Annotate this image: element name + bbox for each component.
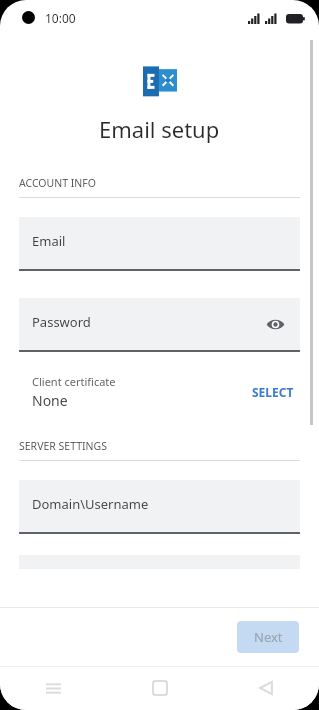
staticText: Password: [32, 313, 91, 331]
button[interactable]: SELECT: [246, 378, 300, 406]
button[interactable]: Domain\Username: [19, 480, 300, 532]
staticText: Client certificate: [32, 374, 116, 389]
button[interactable]: Recents: [0, 666, 107, 710]
staticText: None: [32, 391, 68, 410]
staticText: Domain\Username: [32, 495, 149, 513]
staticText: 10:00: [45, 10, 76, 26]
button[interactable]: Client certificate: [0, 369, 319, 415]
staticText: SERVER SETTINGS: [19, 439, 107, 453]
staticText: Email setup: [99, 114, 220, 144]
button[interactable]: Back: [213, 666, 319, 710]
staticText: ACCOUNT INFO: [19, 176, 96, 190]
button[interactable]: Next: [237, 621, 299, 653]
button[interactable]: Password: [19, 298, 300, 350]
staticText: SELECT: [252, 384, 294, 400]
button[interactable]: Home: [107, 666, 213, 710]
staticText: Email: [32, 232, 66, 250]
staticText: Next: [254, 628, 283, 646]
button[interactable]: Email: [19, 217, 300, 269]
button[interactable]: Show password: [260, 309, 290, 339]
